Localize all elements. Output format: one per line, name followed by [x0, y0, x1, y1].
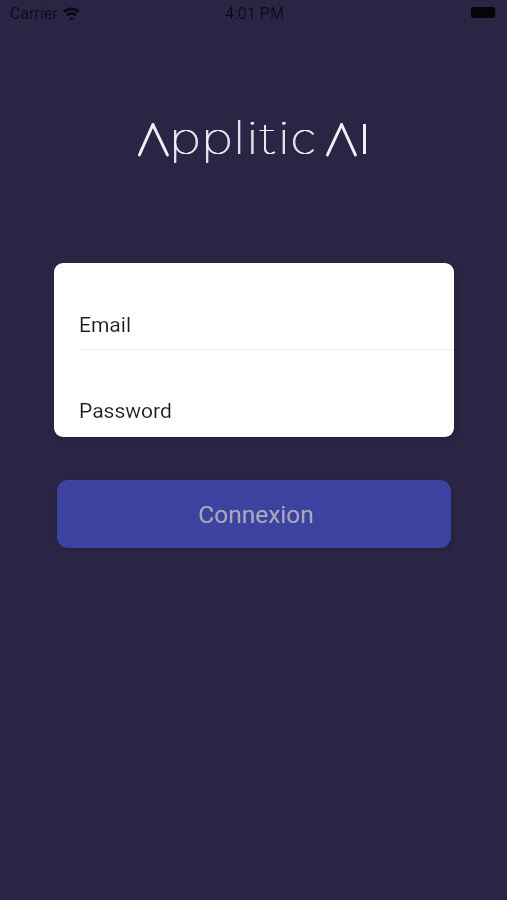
staticText: pplitic — [169, 110, 318, 165]
button[interactable]: Email — [54, 263, 454, 349]
staticText: Connexion — [198, 500, 314, 529]
other: Wi-Fi signal — [62, 6, 81, 20]
staticText: 4:01 PM — [225, 4, 284, 23]
button[interactable]: Password — [54, 350, 454, 437]
staticText: Carrier — [10, 4, 58, 23]
staticText: pplitic — [170, 110, 319, 165]
staticText: Password — [79, 399, 172, 424]
other: Applitic AI — [0, 0, 507, 900]
button[interactable]: Connexion — [57, 480, 451, 548]
staticText: Email — [79, 313, 131, 338]
other: Battery full — [471, 7, 497, 18]
